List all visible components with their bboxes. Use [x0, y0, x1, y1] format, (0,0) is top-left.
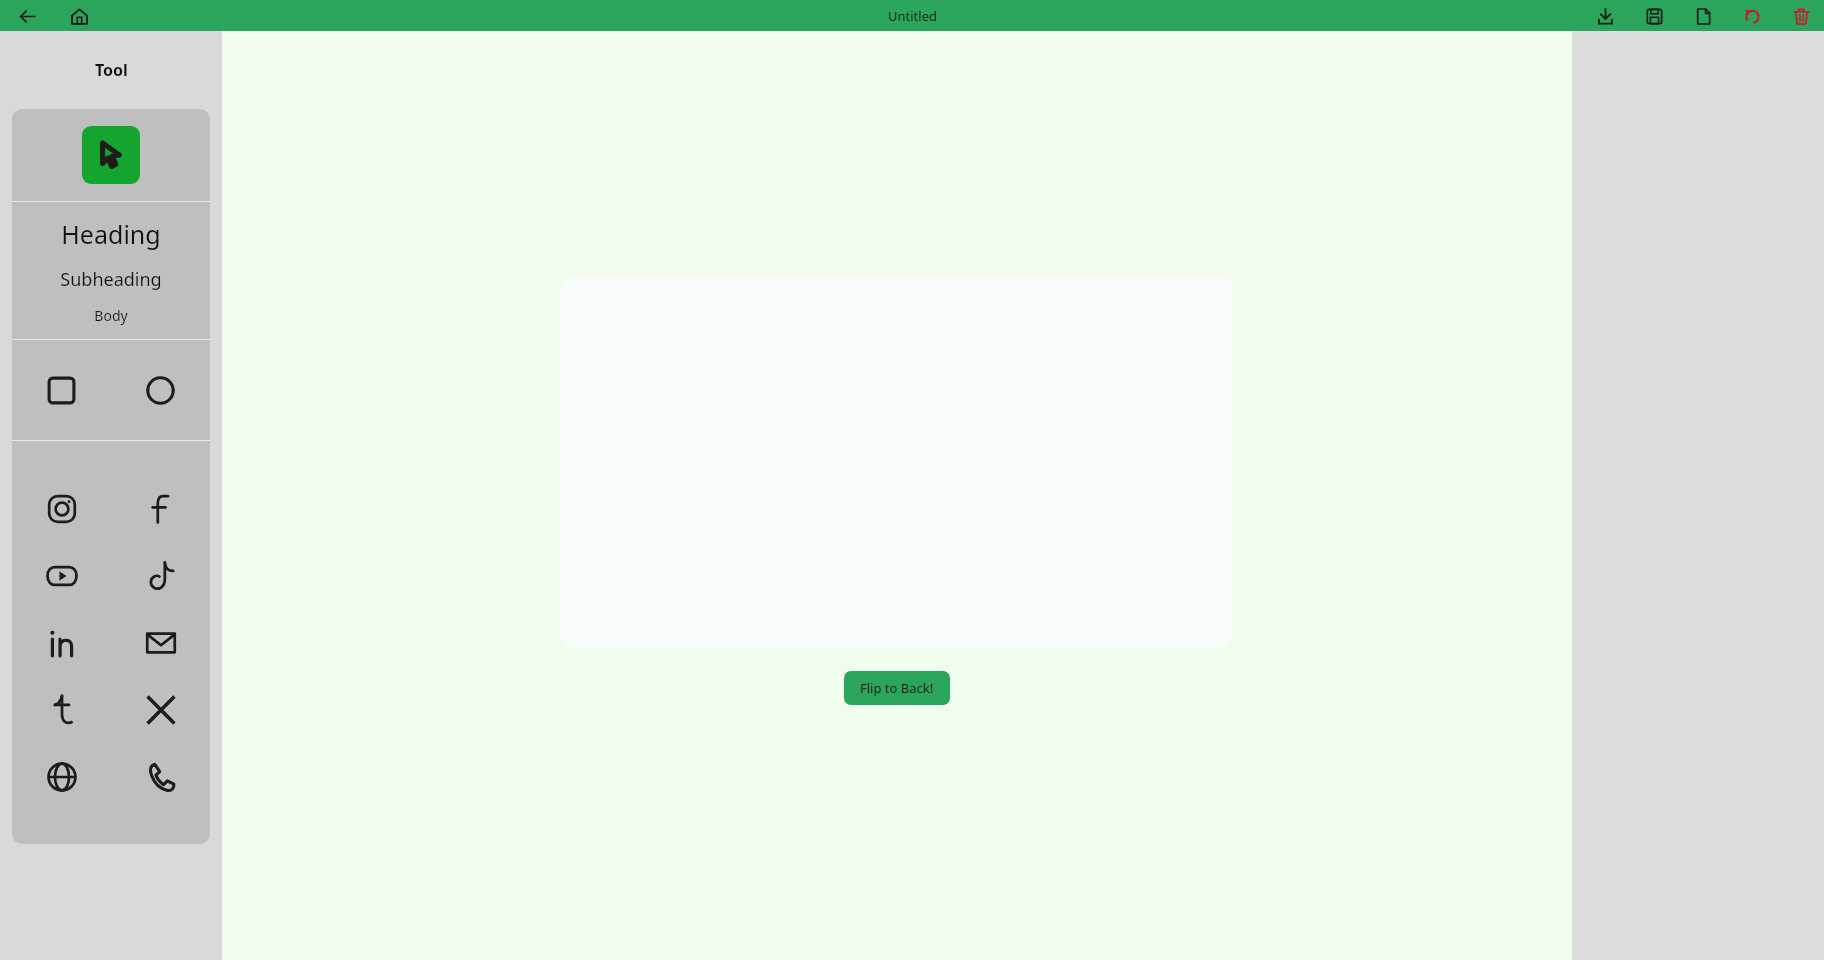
button[interactable]: Back	[14, 3, 40, 29]
button[interactable]: TikTok	[111, 542, 210, 609]
button[interactable]: Facebook	[111, 475, 210, 542]
button[interactable]: Undo	[1739, 3, 1765, 29]
button[interactable]: Heading	[12, 217, 210, 251]
button[interactable]: New file	[1690, 3, 1716, 29]
staticText: Heading	[61, 217, 161, 251]
button[interactable]: Phone	[111, 743, 210, 810]
staticText: Flip to Back!	[860, 679, 934, 697]
button[interactable]: YouTube	[12, 542, 111, 609]
button[interactable]: Download	[1592, 3, 1618, 29]
button[interactable]: Select tool	[12, 109, 210, 201]
button[interactable]: Website	[12, 743, 111, 810]
staticText: Subheading	[60, 267, 162, 292]
button[interactable]: LinkedIn	[12, 609, 111, 676]
button[interactable]: Email	[111, 609, 210, 676]
button[interactable]: Square	[12, 340, 111, 440]
button[interactable]: Tumblr	[12, 676, 111, 743]
button[interactable]: Body	[12, 306, 210, 325]
button[interactable]: Delete	[1788, 3, 1814, 29]
button[interactable]: Flip to Back!	[844, 671, 950, 705]
button[interactable]: Instagram	[12, 475, 111, 542]
button[interactable]: Subheading	[12, 267, 210, 292]
button[interactable]: X	[111, 676, 210, 743]
staticText: Untitled	[888, 7, 937, 25]
button[interactable]: Save	[1641, 3, 1667, 29]
button[interactable]: Home	[66, 3, 92, 29]
staticText: Body	[94, 306, 128, 325]
staticText: Tool	[95, 59, 128, 81]
button[interactable]: Circle	[111, 340, 210, 440]
